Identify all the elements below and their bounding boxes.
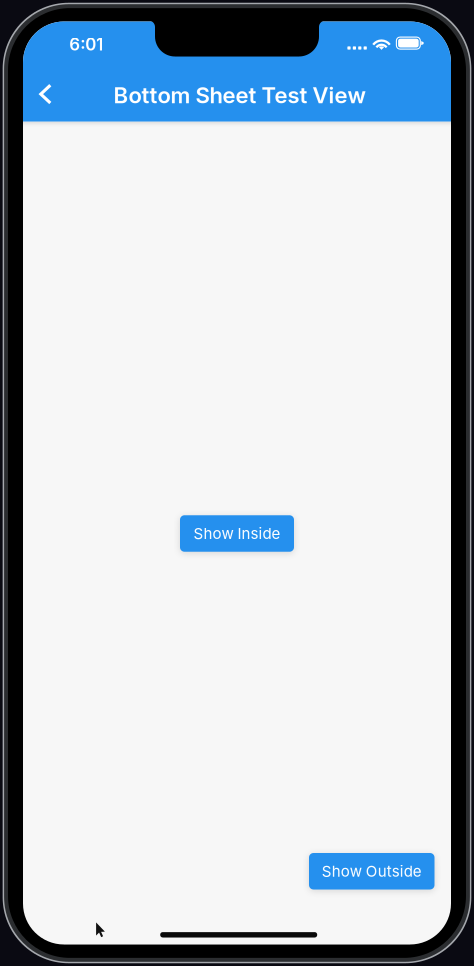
staticText: Show Inside [193, 524, 280, 543]
staticText: 6:01 [69, 34, 103, 55]
staticText: Show Outside [322, 862, 422, 880]
button[interactable]: Show Outside [309, 853, 434, 889]
staticText: Bottom Sheet Test View [113, 82, 365, 109]
button[interactable]: Show Inside [180, 515, 294, 552]
button[interactable]: Back [23, 72, 67, 116]
